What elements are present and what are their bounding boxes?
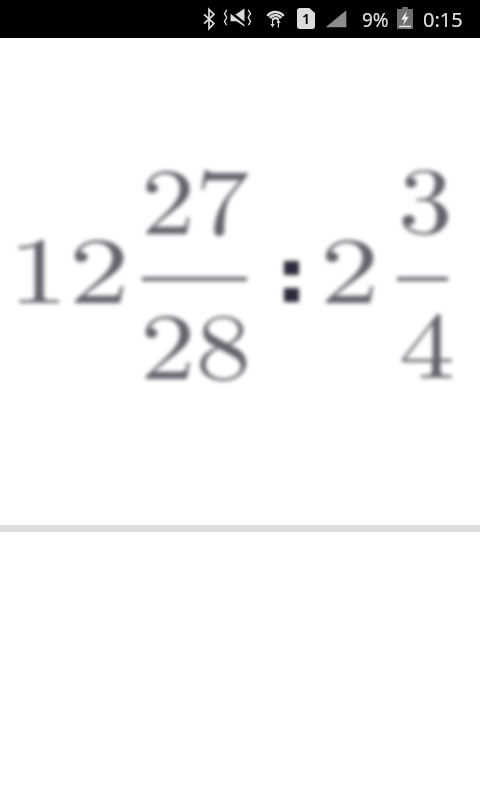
other: Mobile signal — [325, 9, 347, 28]
staticText: 28 — [140, 272, 252, 407]
staticText: 1 — [302, 9, 311, 28]
other: Ringer silent, vibrate — [223, 8, 252, 27]
staticText: 27 — [141, 127, 250, 262]
other: Bluetooth on — [202, 9, 216, 29]
staticText: 2 — [320, 196, 380, 331]
staticText: 0:15 — [423, 6, 463, 33]
other: Wi-Fi connected — [265, 8, 286, 28]
other: Battery charging, 9 percent — [397, 7, 413, 29]
staticText: 4 — [399, 271, 456, 406]
staticText: 12 — [8, 196, 131, 331]
staticText: 9% — [362, 7, 389, 33]
other: SIM 1 — [297, 8, 315, 29]
staticText: 3 — [398, 126, 453, 261]
button[interactable]: Question image: 12 27/28 : 2 3/4 — [0, 0, 480, 525]
